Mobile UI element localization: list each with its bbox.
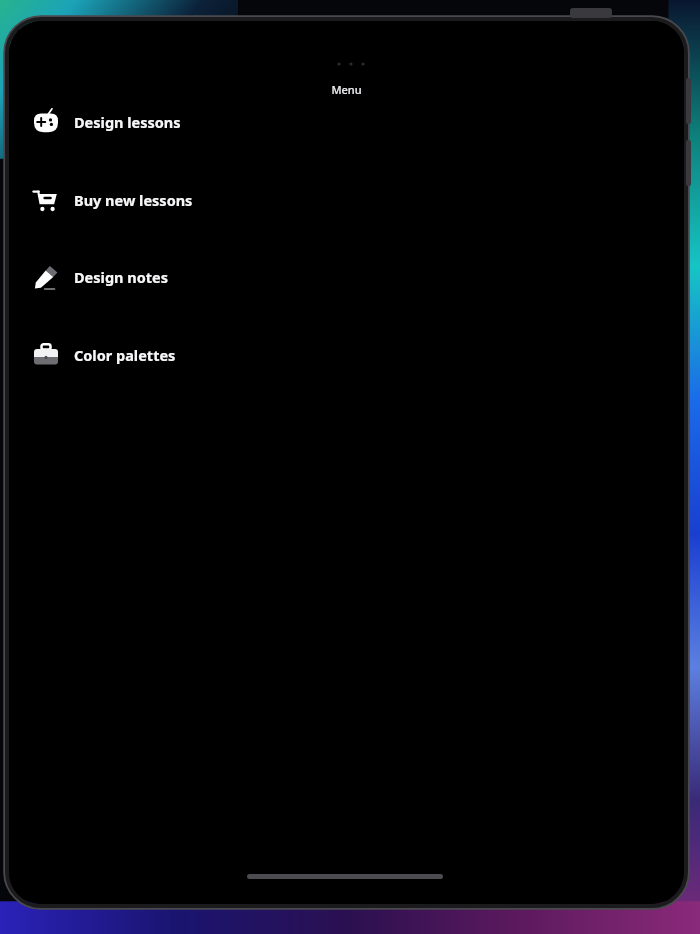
- staticText: Design notes: [74, 267, 168, 287]
- button[interactable]: Color palettes: [31, 333, 331, 377]
- button[interactable]: Design notes: [31, 255, 331, 299]
- staticText: Buy new lessons: [74, 190, 193, 210]
- staticText: Menu: [331, 82, 362, 97]
- staticText: Color palettes: [74, 345, 176, 365]
- staticText: Design lessons: [74, 112, 181, 132]
- button[interactable]: Design lessons: [31, 100, 331, 144]
- button[interactable]: Buy new lessons: [31, 178, 331, 222]
